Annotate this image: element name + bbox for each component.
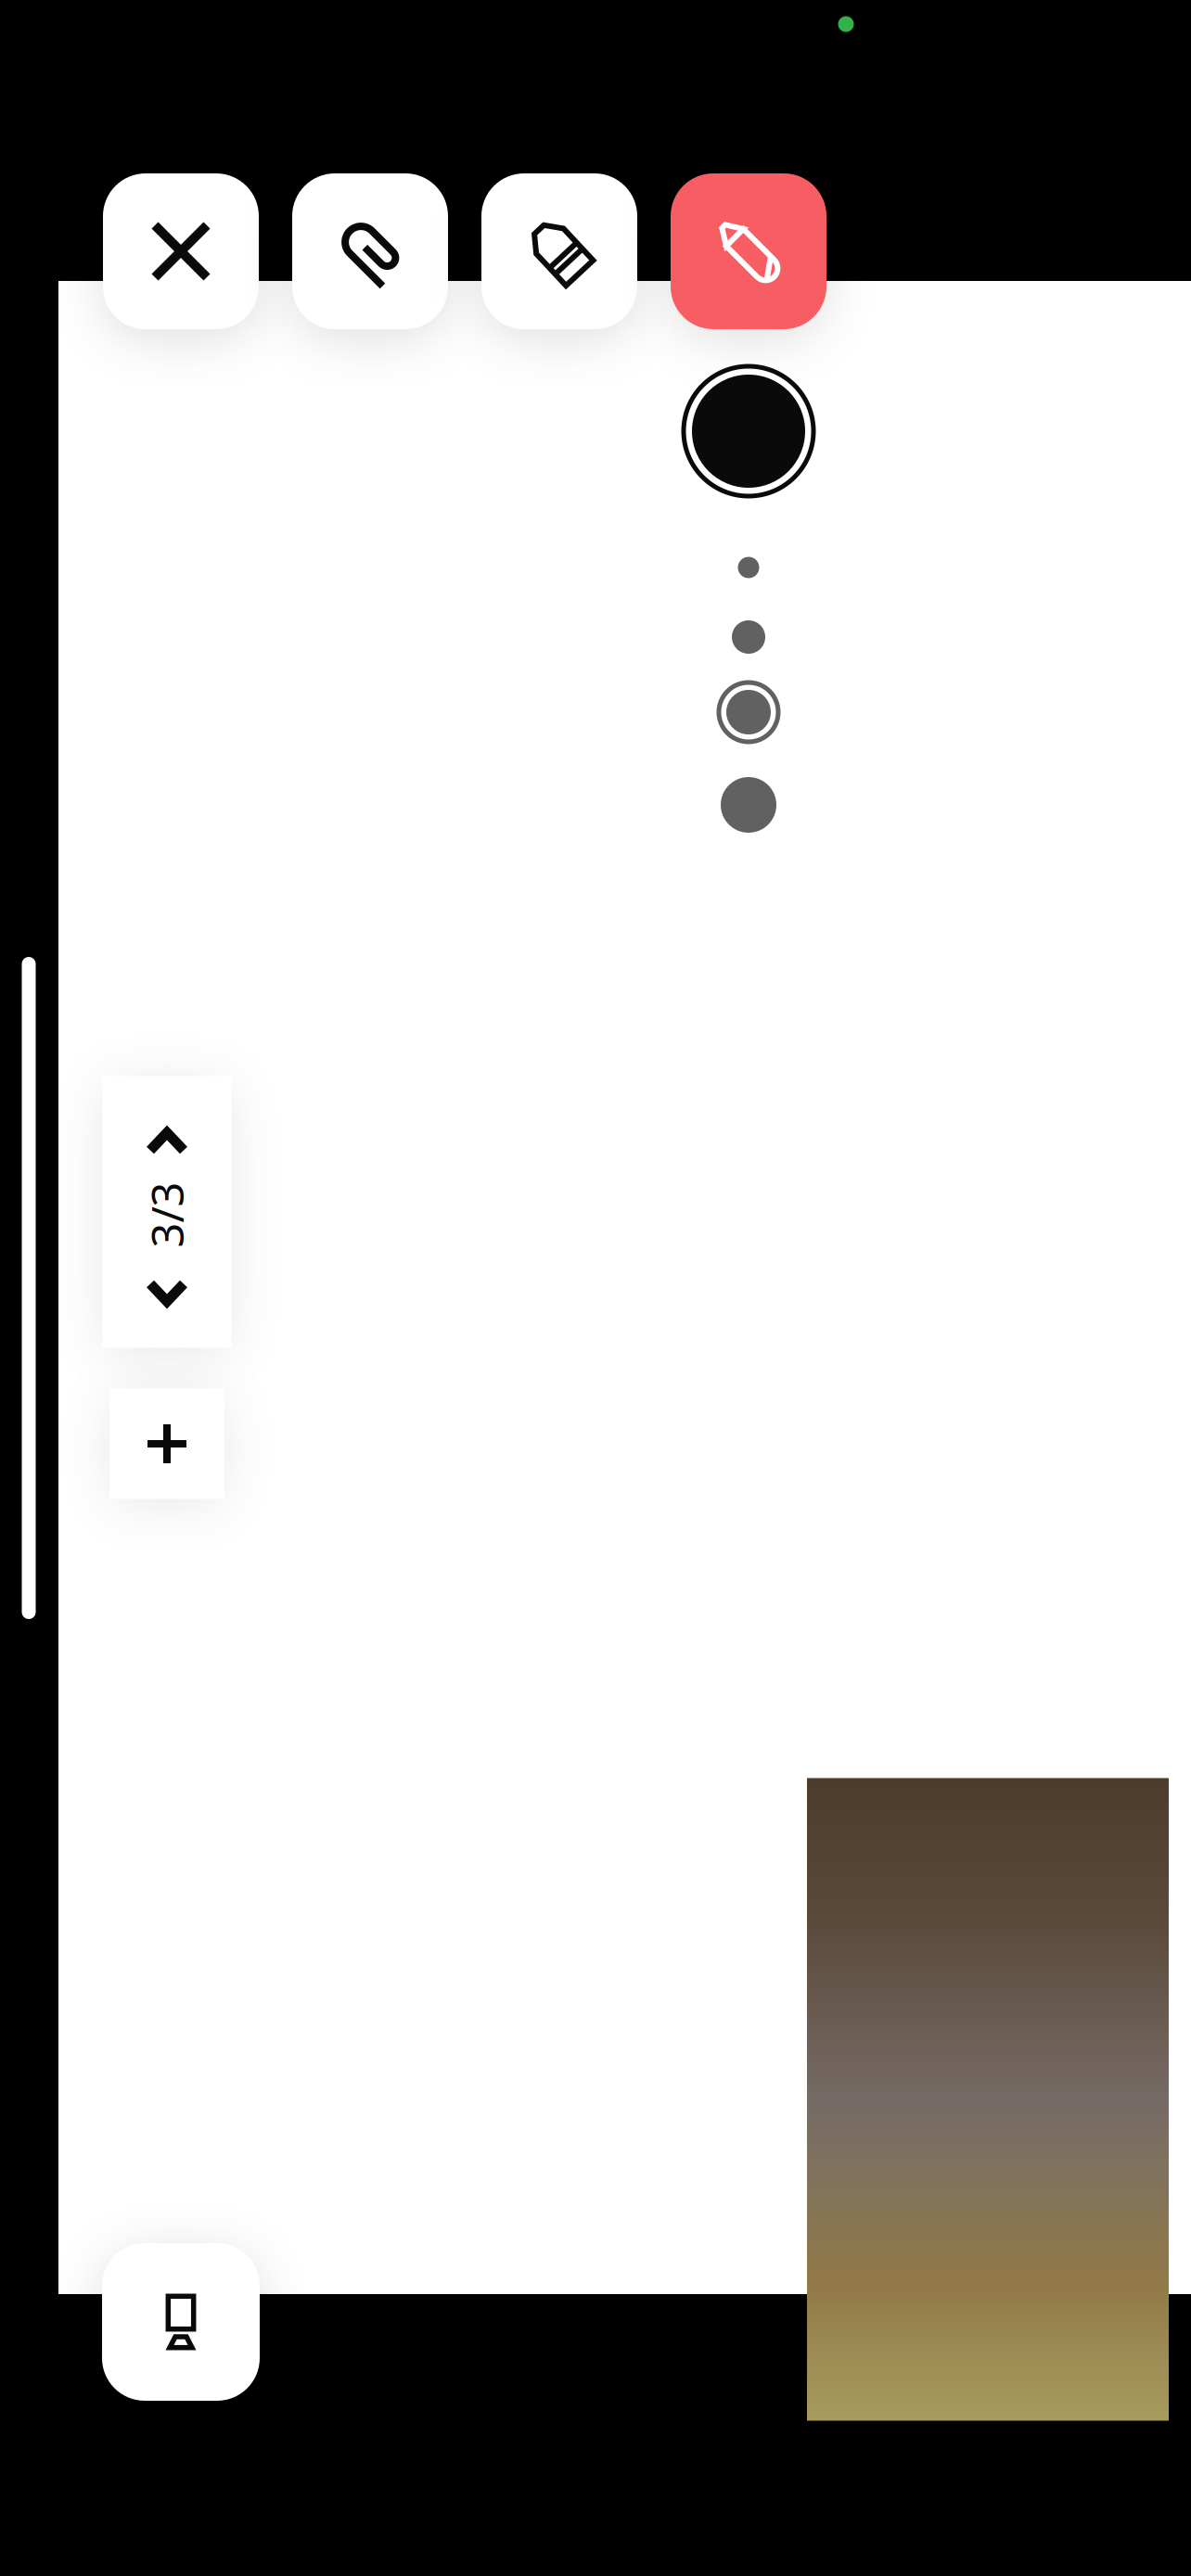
button[interactable]: Extra fine stroke bbox=[723, 542, 775, 593]
button[interactable]: Next page bbox=[102, 1248, 231, 1337]
button[interactable]: Pen, selected bbox=[671, 173, 826, 329]
button[interactable]: Eraser bbox=[481, 173, 637, 329]
button[interactable]: Fine stroke bbox=[723, 611, 775, 663]
button[interactable]: Previous page bbox=[102, 1097, 231, 1186]
button[interactable]: Bold stroke bbox=[713, 770, 784, 840]
button[interactable]: Medium stroke, selected bbox=[713, 677, 784, 747]
button[interactable]: Add page bbox=[109, 1389, 224, 1499]
button[interactable]: Close bbox=[103, 173, 259, 329]
button[interactable]: Attach file bbox=[292, 173, 448, 329]
button[interactable]: Presenter view bbox=[102, 2243, 260, 2401]
staticText: 3/3 bbox=[134, 1186, 200, 1243]
button[interactable]: Camera feed bbox=[807, 1778, 1169, 2421]
button[interactable]: Ink colour black bbox=[679, 362, 818, 501]
